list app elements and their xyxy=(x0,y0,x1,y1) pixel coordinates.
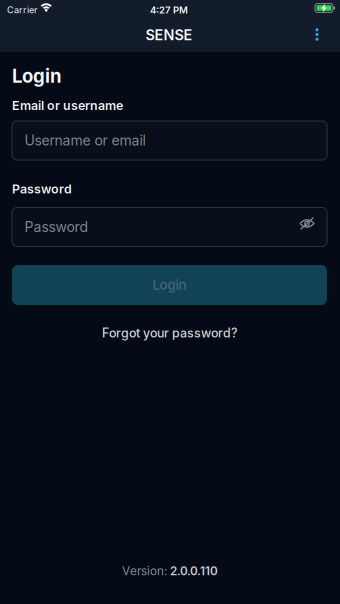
button[interactable]: Login xyxy=(12,265,327,305)
staticText: Login xyxy=(12,65,62,87)
button[interactable]: Password xyxy=(12,207,327,246)
staticText: Email or username xyxy=(12,98,123,113)
staticText: Username or email xyxy=(24,132,145,149)
staticText: SENSE xyxy=(145,26,192,44)
staticText: Password xyxy=(24,218,88,235)
button[interactable] xyxy=(303,20,331,48)
staticText: Forgot your password? xyxy=(102,325,238,340)
staticText: 2.0.0.110 xyxy=(170,564,218,578)
button[interactable]: Forgot your password? xyxy=(50,323,290,343)
button[interactable]: Username or email xyxy=(12,121,327,160)
staticText: Carrier xyxy=(7,4,37,15)
staticText: Version: xyxy=(122,564,167,578)
staticText: Login xyxy=(152,277,186,293)
staticText: 4:27 PM xyxy=(150,4,188,16)
staticText: Password xyxy=(12,181,72,196)
